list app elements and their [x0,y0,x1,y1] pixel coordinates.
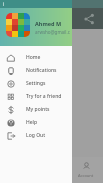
button[interactable]: Try for a friend [0,90,72,103]
staticText: Account [78,173,94,178]
staticText: Notifications [26,67,57,74]
button[interactable]: Log Out [0,129,72,142]
staticText: Ahmed M Safadi [35,20,72,27]
staticText: Try for a friend [26,93,62,100]
staticText: i [3,1,5,8]
button[interactable]: Share [82,12,96,26]
button[interactable]: Home [0,51,72,64]
staticText: Log Out [26,132,46,139]
button[interactable]: Notifications [0,64,72,77]
button[interactable] [72,0,103,183]
button[interactable]: My points [0,103,72,116]
staticText: Help [26,119,38,126]
staticText: arwsho@gmail.com [35,29,72,35]
button[interactable]: Account [69,157,103,183]
staticText: My points [26,106,50,113]
button[interactable]: Settings [0,77,72,90]
staticText: Settings [26,80,46,87]
staticText: Height [6,39,23,46]
button[interactable]: Help [0,116,72,129]
button[interactable]: Ahmed M Safadi [0,8,72,46]
staticText: Home [26,54,41,61]
